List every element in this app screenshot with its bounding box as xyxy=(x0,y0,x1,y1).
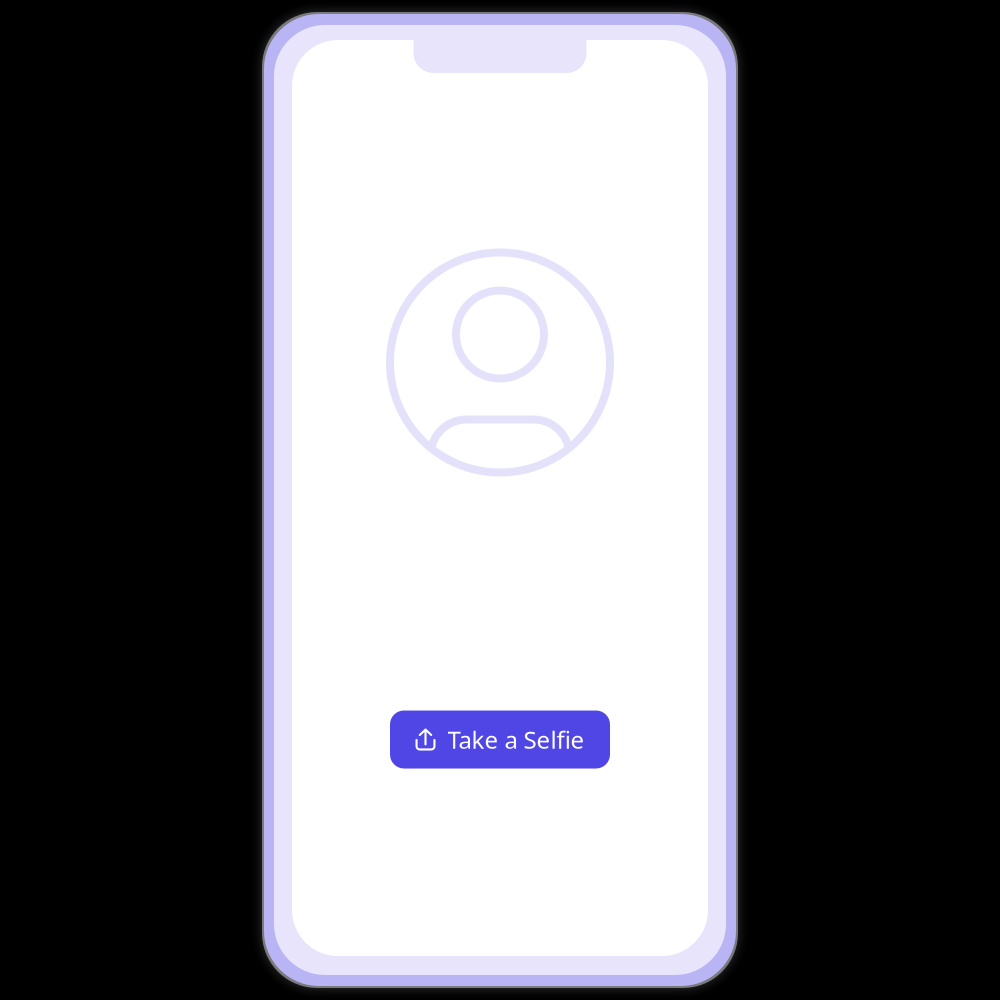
staticText: Take a Selfie xyxy=(447,724,584,755)
button[interactable]: Take a Selfie xyxy=(390,710,610,768)
